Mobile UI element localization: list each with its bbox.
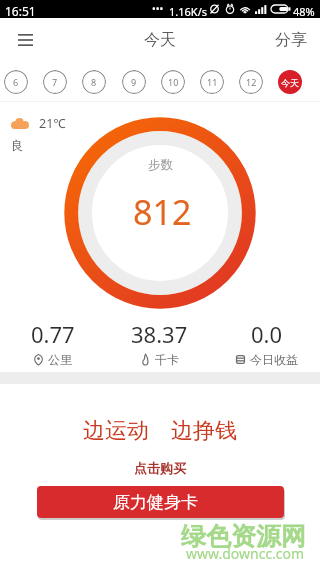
button[interactable]: 0.0 xyxy=(213,319,320,367)
button[interactable]: 11 xyxy=(200,70,224,94)
staticText: 12 xyxy=(246,76,257,88)
button[interactable]: 9 xyxy=(122,70,146,94)
staticText: 原力健身卡 xyxy=(113,492,198,513)
staticText: www.downcc.com xyxy=(186,544,305,563)
staticText: 10 xyxy=(168,76,179,88)
staticText: 0.0 xyxy=(251,319,283,349)
staticText: 步数 xyxy=(148,157,173,173)
staticText: 公里 xyxy=(48,352,72,367)
staticText: 点击购买 xyxy=(134,460,186,476)
staticText: 9 xyxy=(131,76,137,88)
button[interactable]: 今天 xyxy=(278,70,302,94)
staticText: 8 xyxy=(91,76,97,88)
button[interactable]: 10 xyxy=(161,70,185,94)
staticText: 今天 xyxy=(281,77,299,88)
button[interactable]: 7 xyxy=(43,70,67,94)
staticText: 812 xyxy=(133,189,192,235)
button[interactable]: 0.77 xyxy=(0,319,106,367)
staticText: 1.16K/s xyxy=(169,4,207,19)
button[interactable]: 8 xyxy=(82,70,106,94)
staticText: 38.37 xyxy=(131,319,188,349)
button[interactable]: 6 xyxy=(4,70,28,94)
button[interactable]: 12 xyxy=(239,70,263,94)
staticText: 分享 xyxy=(275,30,307,50)
staticText: 绿色资源网 xyxy=(181,521,306,552)
staticText: 0.77 xyxy=(31,319,75,349)
staticText: 21℃ xyxy=(39,115,66,132)
button[interactable]: 38.37 xyxy=(106,319,213,367)
staticText: 边运动 边挣钱 xyxy=(83,414,237,444)
staticText: 7 xyxy=(52,76,58,88)
staticText: ••• xyxy=(152,2,164,16)
button[interactable]: Menu xyxy=(8,23,42,57)
staticText: 6 xyxy=(13,76,19,88)
staticText: 今日收益 xyxy=(250,352,298,367)
button[interactable]: 分享 xyxy=(262,19,320,61)
button[interactable]: 原力健身卡 xyxy=(37,486,284,518)
staticText: 48% xyxy=(293,4,315,19)
staticText: 良 xyxy=(11,138,24,154)
staticText: 今天 xyxy=(144,30,176,50)
staticText: 16:51 xyxy=(5,3,36,19)
staticText: 千卡 xyxy=(155,352,179,367)
staticText: 11 xyxy=(207,76,218,88)
